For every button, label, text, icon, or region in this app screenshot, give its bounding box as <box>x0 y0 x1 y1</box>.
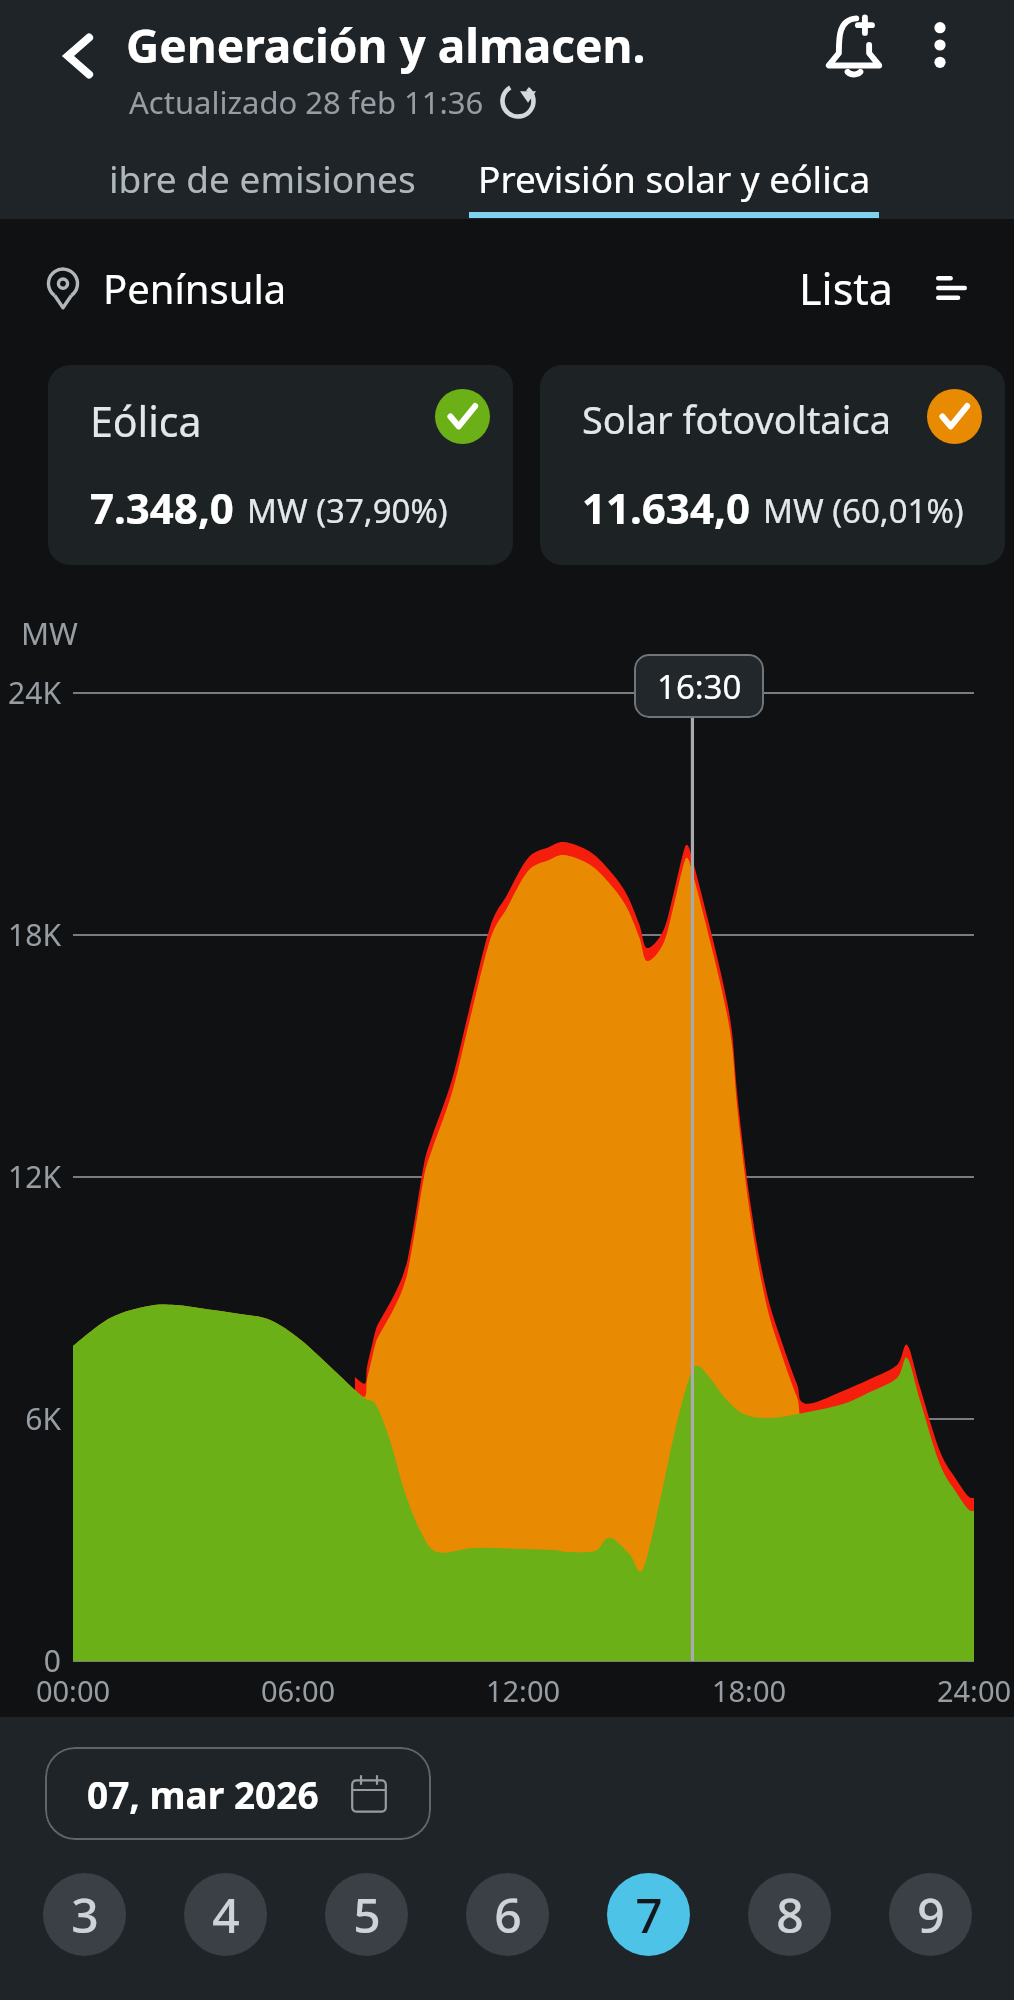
button[interactable]: Solar fotovoltaica <box>540 365 1005 565</box>
staticText: 5 <box>353 1882 381 1947</box>
staticText: 00:00 <box>3 1671 143 1710</box>
staticText: 16:30 <box>657 664 742 709</box>
staticText: ibre de emisiones <box>109 153 416 203</box>
staticText: Eólica <box>90 393 202 449</box>
staticText: Previsión solar y eólica <box>478 153 871 203</box>
button[interactable]: ibre de emisiones <box>52 148 472 219</box>
button[interactable]: Add alert <box>806 0 902 90</box>
button[interactable]: 07, mar 2026 <box>45 1747 431 1840</box>
staticText: 07, mar 2026 <box>87 1769 319 1819</box>
staticText: 7.348,0 <box>90 479 234 536</box>
button[interactable]: Península <box>41 261 287 315</box>
staticText: 9 <box>917 1882 945 1947</box>
staticText: 6K <box>0 1398 61 1439</box>
staticText: MW (37,90%) <box>247 488 448 533</box>
staticText: 6 <box>494 1882 522 1947</box>
staticText: Generación y almacen. <box>126 14 646 77</box>
staticText: 06:00 <box>228 1671 368 1710</box>
staticText: 24:00 <box>904 1671 1014 1710</box>
staticText: 18K <box>0 914 61 955</box>
staticText: Península <box>103 261 287 315</box>
button[interactable]: 5 <box>325 1873 408 1956</box>
staticText: 12K <box>0 1156 61 1197</box>
button[interactable]: 7 <box>607 1873 690 1956</box>
button[interactable]: 16:30 <box>634 654 764 718</box>
button[interactable]: 9 <box>889 1873 972 1956</box>
button[interactable]: Eólica <box>48 365 513 565</box>
staticText: MW (60,01%) <box>763 488 964 533</box>
staticText: Actualizado 28 feb 11:36 <box>129 81 484 123</box>
button[interactable]: Refresh <box>498 78 546 126</box>
staticText: Solar fotovoltaica <box>582 393 892 445</box>
button[interactable]: Previsión solar y eólica <box>469 148 879 219</box>
button[interactable]: 4 <box>184 1873 267 1956</box>
button[interactable]: 3 <box>43 1873 126 1956</box>
staticText: 18:00 <box>679 1671 819 1710</box>
staticText: 4 <box>212 1882 240 1947</box>
staticText: Lista <box>799 259 893 318</box>
staticText: 24K <box>0 672 61 713</box>
staticText: 8 <box>776 1882 804 1947</box>
button[interactable]: 6 <box>466 1873 549 1956</box>
staticText: 12:00 <box>453 1671 593 1710</box>
staticText: 11.634,0 <box>582 479 750 536</box>
button[interactable]: More options <box>905 0 975 90</box>
button[interactable]: Sort <box>925 262 977 314</box>
staticText: 3 <box>71 1882 99 1947</box>
staticText: 7 <box>635 1882 663 1947</box>
button[interactable]: Lista <box>795 249 897 328</box>
button[interactable]: 8 <box>748 1873 831 1956</box>
staticText: 0 <box>0 1640 61 1681</box>
button[interactable]: Back <box>24 0 134 112</box>
staticText: MW <box>21 612 78 654</box>
